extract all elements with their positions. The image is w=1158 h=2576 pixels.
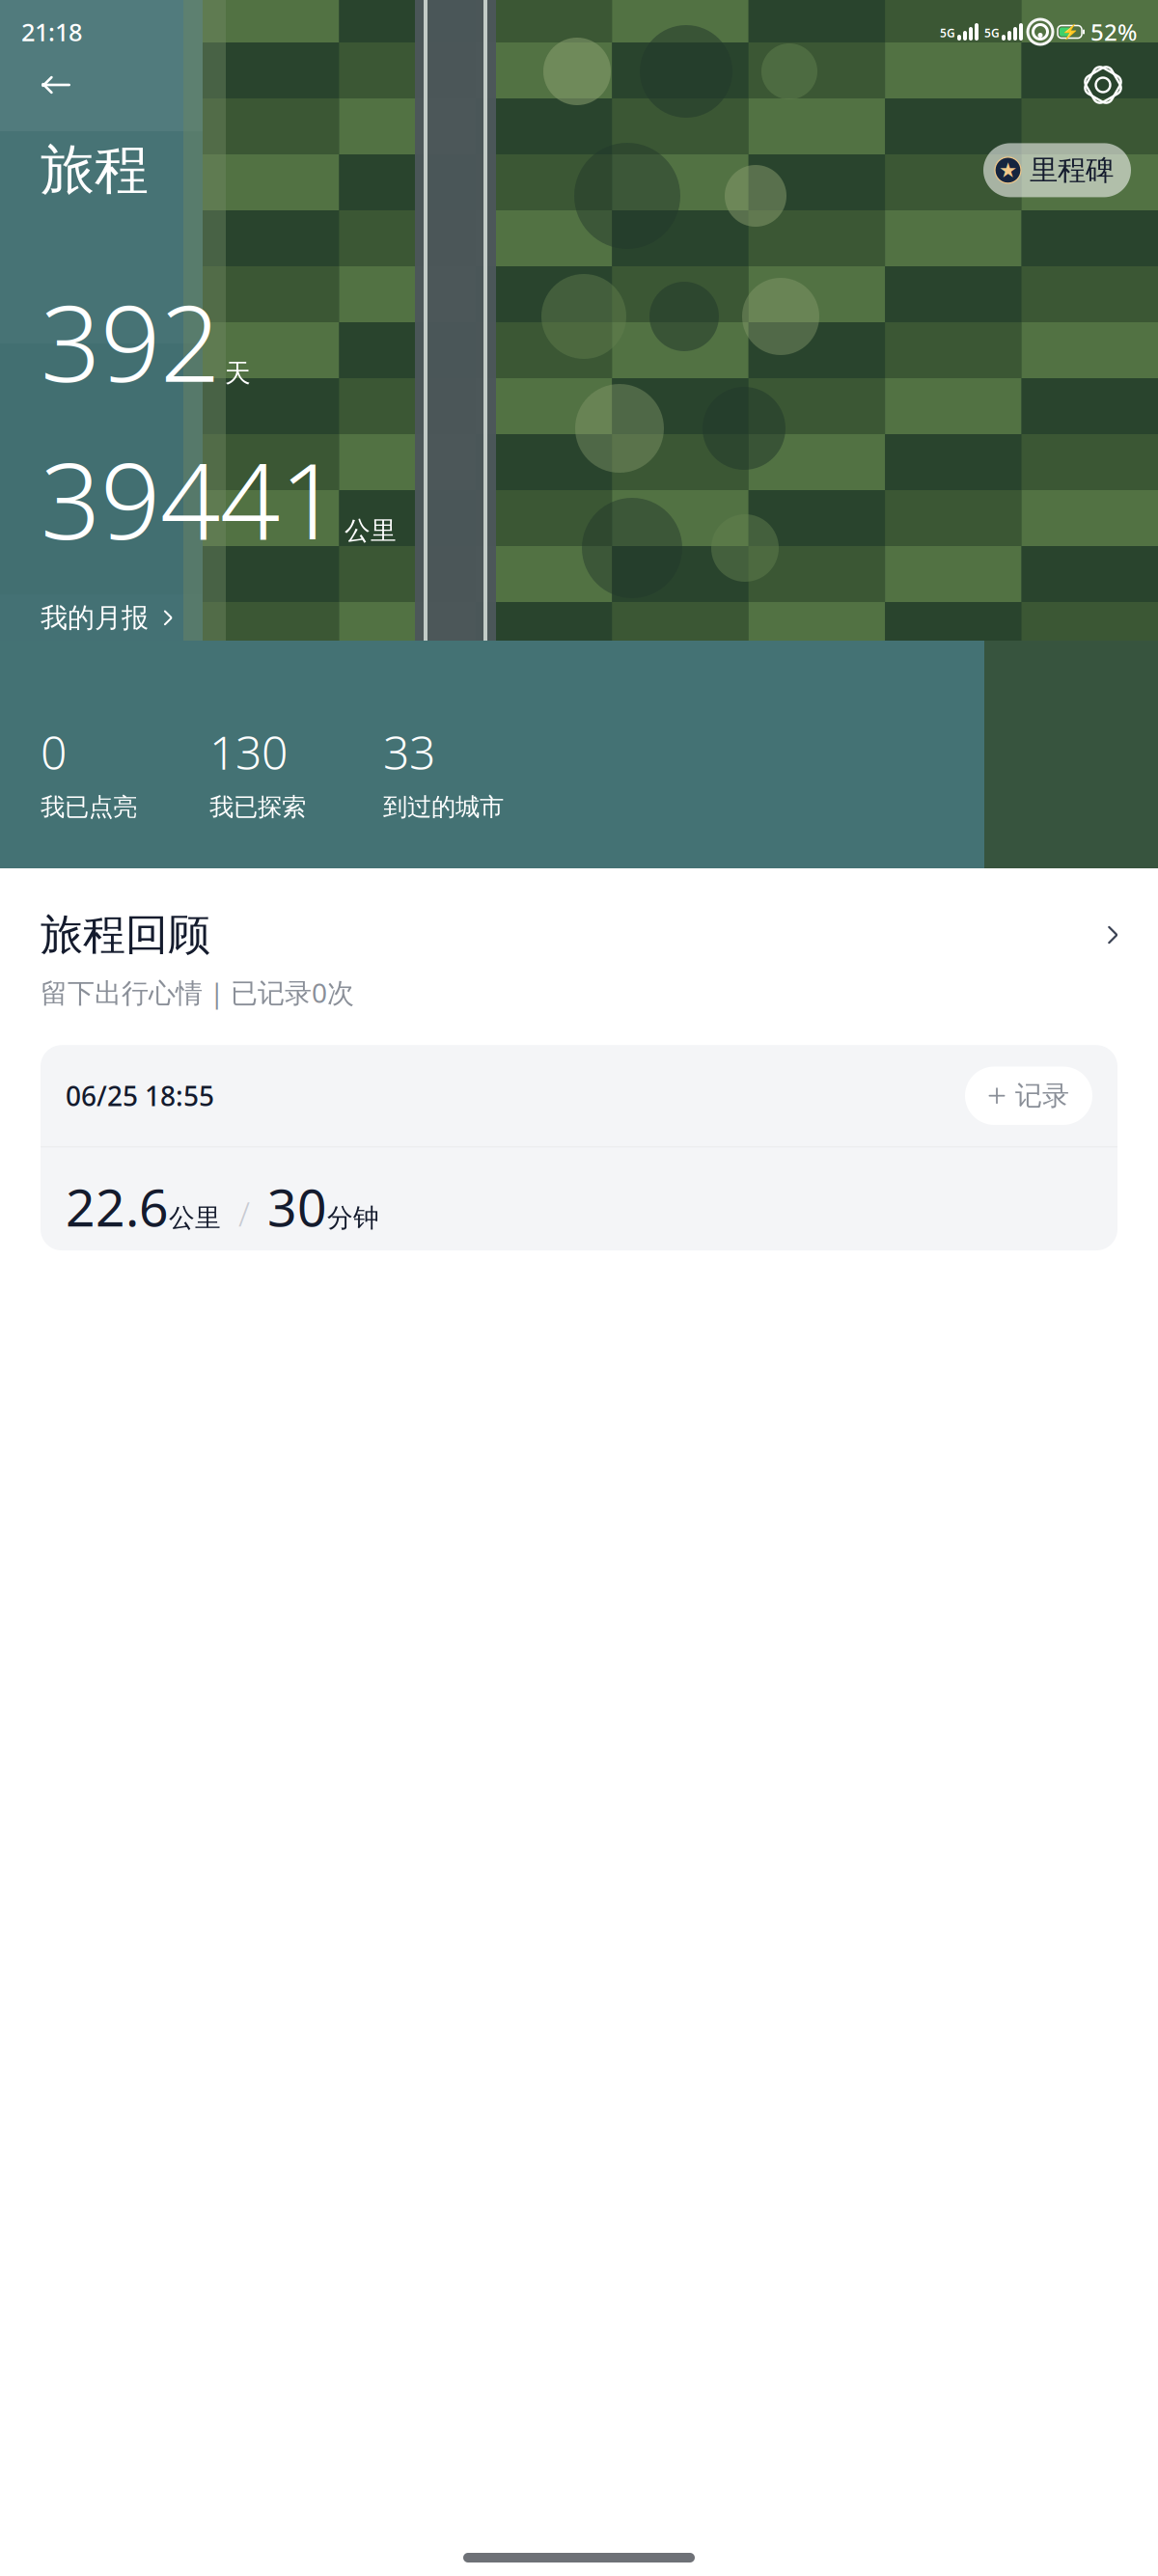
staticText: 里程碑 bbox=[1030, 153, 1114, 188]
staticText: 5G bbox=[984, 25, 1000, 41]
staticText: 我的月报 bbox=[41, 601, 149, 634]
button[interactable]: 我的月报 bbox=[0, 594, 212, 642]
staticText: 分钟 bbox=[327, 1202, 379, 1234]
staticText: 0 bbox=[41, 721, 67, 782]
staticText: ⚡ bbox=[1061, 24, 1078, 40]
staticText: 22.6 bbox=[66, 1172, 169, 1241]
staticText: 30 bbox=[267, 1172, 327, 1241]
staticText: 52% bbox=[1090, 16, 1137, 47]
staticText: 公里 bbox=[345, 515, 397, 547]
staticText: 天 bbox=[225, 357, 251, 389]
staticText: 到过的城市 bbox=[383, 792, 504, 822]
staticText: 130 bbox=[209, 721, 288, 782]
staticText: 5G bbox=[940, 25, 955, 41]
staticText: 21:18 bbox=[21, 16, 82, 48]
staticText: 记录 bbox=[1015, 1079, 1069, 1112]
button[interactable]: ★ bbox=[983, 143, 1131, 197]
staticText: 留下出行心情 | 已记录0次 bbox=[41, 974, 354, 1010]
staticText: 我已点亮 bbox=[41, 792, 137, 822]
staticText: 我已探索 bbox=[209, 792, 306, 822]
staticText: 33 bbox=[383, 721, 435, 782]
staticText: 06/25 18:55 bbox=[66, 1078, 214, 1114]
button[interactable]: 返回 bbox=[27, 58, 85, 112]
button[interactable]: 旅程回顾 bbox=[0, 868, 1158, 967]
staticText: 旅程 bbox=[41, 137, 149, 203]
staticText: 旅程回顾 bbox=[41, 909, 210, 961]
staticText: ★ bbox=[999, 159, 1017, 182]
button[interactable]: 记录 bbox=[965, 1067, 1092, 1125]
staticText: 39441 bbox=[41, 428, 340, 568]
button[interactable]: 06/25 18:55 bbox=[0, 1010, 1158, 1250]
staticText: 公里 bbox=[169, 1202, 221, 1234]
staticText: / bbox=[221, 1191, 267, 1236]
staticText: 392 bbox=[41, 271, 220, 411]
button[interactable]: 设置 bbox=[1075, 61, 1131, 109]
